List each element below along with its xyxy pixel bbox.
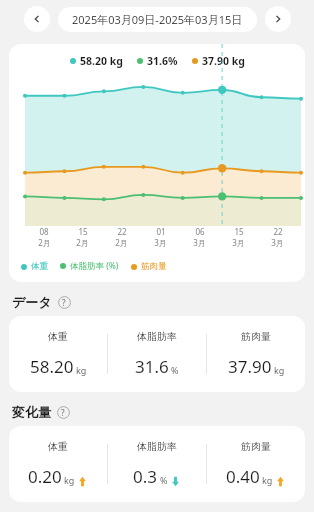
staticText: 37.90 bbox=[228, 355, 272, 378]
staticText: 22 bbox=[273, 226, 283, 237]
staticText: 0.40 bbox=[226, 465, 260, 488]
staticText: 58.20 kg bbox=[80, 54, 123, 68]
staticText: kg bbox=[262, 474, 273, 486]
staticText: 08 bbox=[39, 226, 49, 237]
button[interactable]: 前の週 bbox=[24, 6, 50, 32]
staticText: 体脂肪率 (%) bbox=[70, 260, 119, 272]
staticText: 2月 bbox=[115, 237, 128, 248]
staticText: ? bbox=[62, 297, 66, 308]
staticText: 体重 bbox=[31, 261, 48, 272]
staticText: 15 bbox=[234, 226, 244, 237]
staticText: 15 bbox=[78, 226, 88, 237]
staticText: kg bbox=[64, 474, 75, 486]
staticText: 0.3 bbox=[133, 465, 158, 488]
staticText: 01 bbox=[156, 226, 166, 237]
staticText: 31.6% bbox=[147, 54, 178, 68]
staticText: % bbox=[160, 474, 168, 486]
staticText: 筋肉量 bbox=[241, 440, 271, 453]
staticText: 2025年03月09日-2025年03月15日 bbox=[72, 12, 243, 27]
staticText: 3月 bbox=[193, 237, 206, 248]
staticText: kg bbox=[76, 364, 87, 376]
staticText: 3月 bbox=[271, 237, 284, 248]
staticText: 31.6 bbox=[135, 355, 169, 378]
staticText: 22 bbox=[117, 226, 127, 237]
staticText: 体重 bbox=[48, 330, 68, 343]
button[interactable]: ヘルプ bbox=[56, 405, 70, 419]
staticText: 体脂肪率 bbox=[137, 440, 177, 453]
staticText: kg bbox=[274, 364, 285, 376]
staticText: 3月 bbox=[232, 237, 245, 248]
staticText: 体脂肪率 bbox=[137, 330, 177, 343]
staticText: 2月 bbox=[38, 237, 51, 248]
staticText: ? bbox=[61, 407, 65, 418]
staticText: 37.90 kg bbox=[202, 54, 245, 68]
button[interactable]: 体重 bbox=[9, 426, 305, 502]
staticText: 筋肉量 bbox=[241, 330, 271, 343]
staticText: 0.20 bbox=[28, 465, 62, 488]
staticText: 体重 bbox=[48, 440, 68, 453]
staticText: 変化量 bbox=[12, 404, 51, 420]
staticText: 3月 bbox=[154, 237, 167, 248]
staticText: % bbox=[171, 364, 179, 376]
staticText: データ bbox=[12, 294, 52, 310]
staticText: 2月 bbox=[76, 237, 89, 248]
button[interactable]: ヘルプ bbox=[57, 295, 71, 309]
button[interactable]: 体重 bbox=[9, 316, 305, 392]
button[interactable]: 2025年03月09日-2025年03月15日 bbox=[58, 7, 257, 32]
button[interactable]: 次の週 bbox=[265, 6, 291, 32]
button[interactable]: 58.20 kg bbox=[9, 44, 305, 282]
staticText: 06 bbox=[195, 226, 205, 237]
staticText: 筋肉量 bbox=[141, 261, 167, 272]
staticText: 58.20 bbox=[30, 355, 74, 378]
